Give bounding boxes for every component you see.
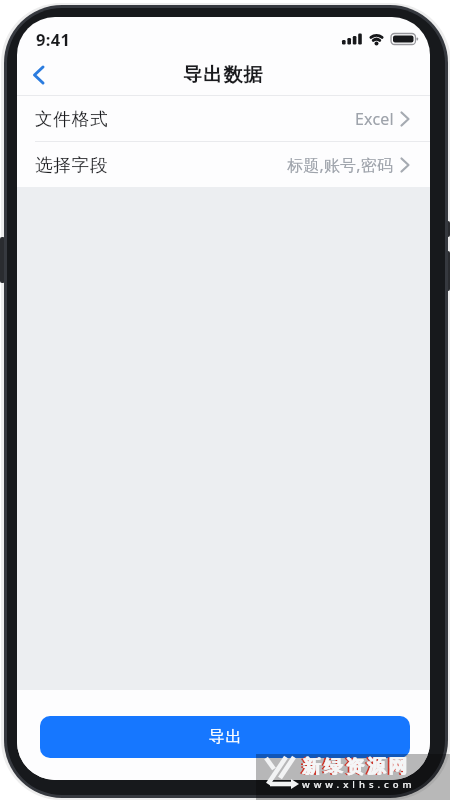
staticText: 新绿资源网 bbox=[303, 755, 411, 778]
staticText: 导出数据 bbox=[183, 63, 264, 87]
staticText: 新绿资源网 bbox=[302, 755, 410, 778]
button[interactable]: 导出 bbox=[40, 716, 410, 758]
staticText: 文件格式 bbox=[35, 108, 109, 130]
button[interactable]: 文件格式 bbox=[17, 96, 430, 141]
staticText: 导出 bbox=[208, 727, 242, 747]
button[interactable]: 导出数据 bbox=[17, 55, 430, 95]
staticText: 标题,账号,密码 bbox=[287, 154, 394, 176]
staticText: Excel bbox=[355, 108, 394, 130]
staticText: 新绿资源网 bbox=[300, 755, 408, 778]
staticText: www.xlhs.com bbox=[302, 778, 416, 791]
staticText: 选择字段 bbox=[35, 154, 109, 176]
staticText: 9:41 bbox=[36, 28, 71, 50]
button[interactable]: 选择字段 bbox=[17, 142, 430, 187]
